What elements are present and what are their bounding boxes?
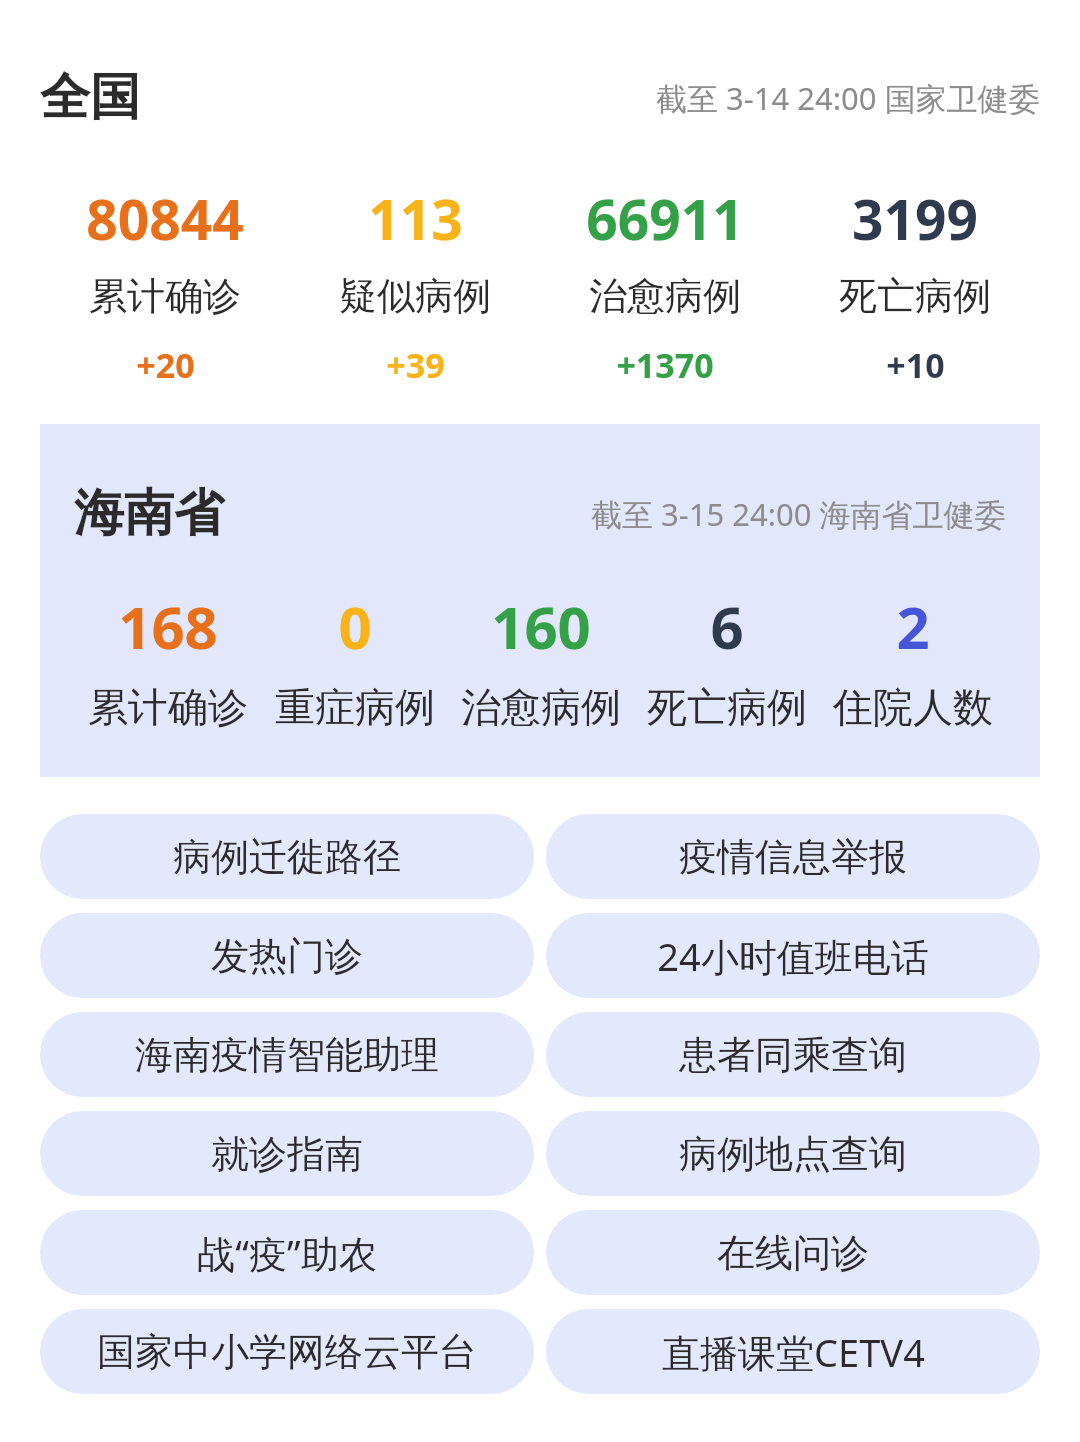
staticText: 3199	[852, 181, 978, 256]
staticText: +10	[886, 342, 945, 388]
staticText: +1370	[616, 342, 714, 388]
staticText: 战“疫”助农	[197, 1227, 377, 1279]
button[interactable]: 国家中小学网络云平台	[40, 1309, 534, 1394]
button[interactable]: 海南疫情智能助理	[40, 1012, 534, 1097]
staticText: 海南省	[74, 482, 224, 545]
staticText: 截至 3-15 24:00 海南省卫健委	[591, 493, 1006, 535]
button[interactable]: 战“疫”助农	[40, 1210, 534, 1295]
staticText: 海南疫情智能助理	[135, 1031, 439, 1079]
staticText: 80844	[86, 181, 244, 256]
staticText: 累计确诊	[89, 272, 241, 320]
button[interactable]: 病例迁徙路径	[40, 814, 534, 899]
button[interactable]: 在线问诊	[546, 1210, 1040, 1295]
button[interactable]: 患者同乘查询	[546, 1012, 1040, 1097]
staticText: 0	[338, 587, 372, 666]
staticText: 2	[896, 587, 930, 666]
staticText: 死亡病例	[647, 682, 807, 732]
button[interactable]: 病例地点查询	[546, 1111, 1040, 1196]
staticText: 患者同乘查询	[679, 1031, 907, 1079]
staticText: 国家中小学网络云平台	[97, 1328, 477, 1376]
button[interactable]: 24小时值班电话	[546, 913, 1040, 998]
staticText: 住院人数	[833, 682, 993, 732]
staticText: 治愈病例	[461, 682, 621, 732]
staticText: 24小时值班电话	[657, 930, 929, 982]
staticText: 发热门诊	[211, 932, 363, 980]
button[interactable]: 就诊指南	[40, 1111, 534, 1196]
staticText: 病例迁徙路径	[173, 833, 401, 881]
button[interactable]: 直播课堂CETV4	[546, 1309, 1040, 1394]
staticText: +20	[136, 342, 195, 388]
staticText: 在线问诊	[717, 1229, 869, 1277]
staticText: 病例地点查询	[679, 1130, 907, 1178]
staticText: 治愈病例	[589, 272, 741, 320]
staticText: 疑似病例	[339, 272, 491, 320]
staticText: 直播课堂CETV4	[662, 1326, 925, 1378]
staticText: 113	[368, 181, 463, 256]
staticText: 重症病例	[275, 682, 435, 732]
staticText: 累计确诊	[88, 682, 248, 732]
staticText: 死亡病例	[839, 272, 991, 320]
button[interactable]: 发热门诊	[40, 913, 534, 998]
button[interactable]: 疫情信息举报	[546, 814, 1040, 899]
staticText: 就诊指南	[211, 1130, 363, 1178]
staticText: 66911	[586, 181, 744, 256]
staticText: 全国	[40, 66, 140, 129]
staticText: 6	[710, 587, 744, 666]
staticText: 截至 3-14 24:00 国家卫健委	[656, 77, 1040, 119]
staticText: 疫情信息举报	[679, 833, 907, 881]
staticText: 160	[491, 587, 591, 666]
staticText: 168	[118, 587, 218, 666]
staticText: +39	[386, 342, 445, 388]
